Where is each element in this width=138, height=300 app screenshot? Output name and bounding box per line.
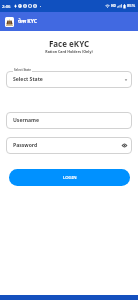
other: Show password: [122, 143, 127, 148]
button[interactable]: Username: [6, 112, 132, 129]
staticText: Select State: [13, 76, 43, 83]
staticText: Face eKYC: [0, 38, 138, 49]
staticText: Username: [13, 117, 40, 124]
button[interactable]: Password: [6, 137, 132, 154]
staticText: फेस KYC: [18, 18, 38, 25]
staticText: LOGIN: [63, 174, 77, 180]
other: Open dropdown: [124, 78, 128, 82]
staticText: Ration Card Holders (Only): [0, 49, 138, 54]
staticText: Select State: [14, 68, 31, 72]
button[interactable]: Select State: [6, 71, 132, 88]
button[interactable]: LOGIN: [9, 169, 130, 186]
staticText: 85%: [127, 3, 136, 9]
staticText: HD: [111, 4, 116, 8]
staticText: Password: [13, 142, 38, 149]
staticText: 2:06: [2, 3, 11, 9]
